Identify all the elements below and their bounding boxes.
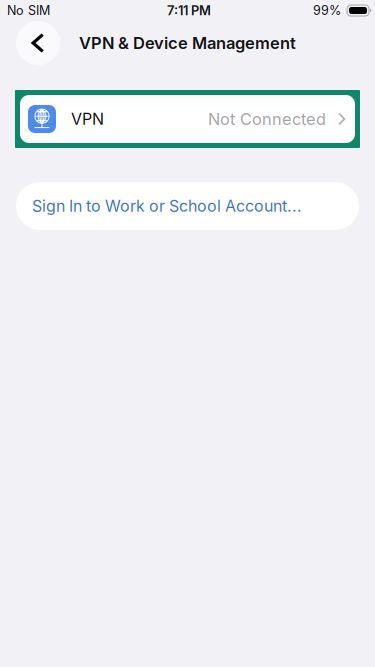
staticText: Not Connected: [208, 109, 326, 129]
staticText: 99%: [313, 3, 341, 18]
staticText: VPN & Device Management: [79, 33, 296, 53]
staticText: 7:11 PM: [167, 3, 211, 18]
staticText: Sign In to Work or School Account...: [32, 196, 302, 216]
staticText: No SIM: [7, 3, 50, 18]
button[interactable]: Sign In to Work or School Account...: [16, 182, 359, 230]
staticText: VPN: [71, 109, 104, 129]
button[interactable]: Back: [16, 21, 60, 65]
button[interactable]: VPN: [15, 90, 360, 148]
